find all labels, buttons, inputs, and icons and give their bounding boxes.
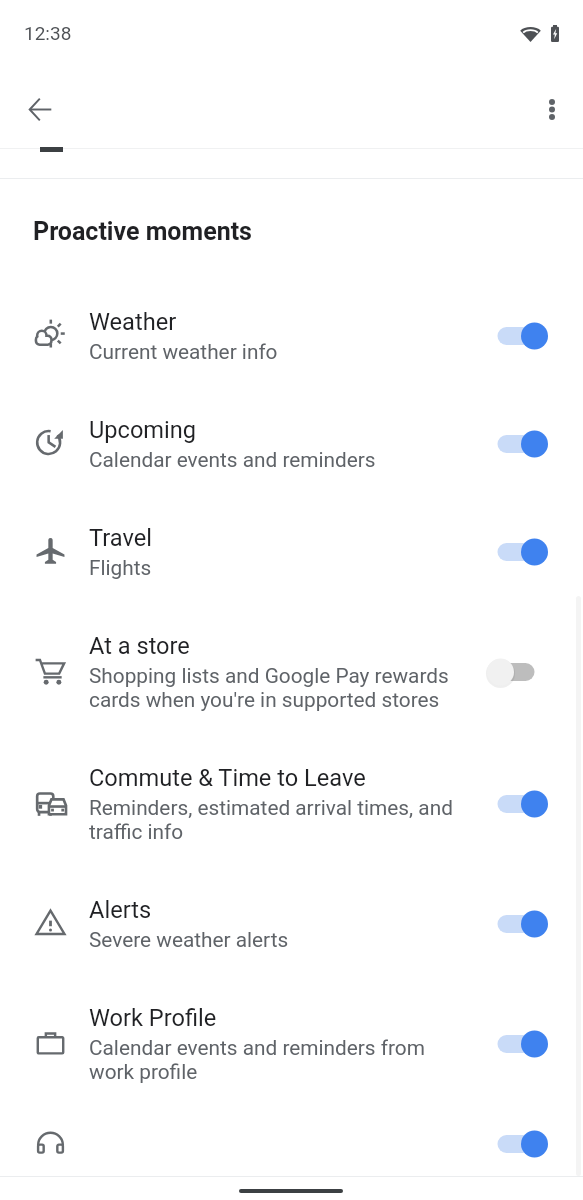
staticText: Reminders, estimated arrival times, and … [89,796,453,844]
button[interactable]: Weather [0,282,583,390]
staticText: Flights [89,556,152,580]
staticText: Shopping lists and Google Pay rewards ca… [89,664,449,712]
button[interactable]: On [483,780,583,828]
button[interactable]: At a store [0,606,583,738]
button[interactable]: On [483,1120,583,1168]
button[interactable]: Alerts [0,870,583,978]
button[interactable]: Work Profile [0,978,583,1110]
staticText: Calendar events and reminders from work … [89,1036,425,1084]
button[interactable]: On [483,900,583,948]
button[interactable]: On [483,1020,583,1068]
staticText: 12:38 [24,22,72,44]
button[interactable]: On [483,312,583,360]
staticText: Upcoming [89,416,197,444]
staticText: At a store [89,632,190,660]
staticText: Severe weather alerts [89,928,289,952]
staticText: Travel [89,524,152,552]
staticText: Work Profile [89,1004,217,1032]
button[interactable]: On [483,528,583,576]
button[interactable]: On [483,420,583,468]
button[interactable]: Back [18,87,62,131]
staticText: Weather [89,308,177,336]
button[interactable]: More options [530,87,574,131]
staticText: Commute & Time to Leave [89,764,366,792]
button[interactable]: On [0,1110,583,1187]
button[interactable]: Upcoming [0,390,583,498]
staticText: Proactive moments [33,217,252,246]
button[interactable]: Commute & Time to Leave [0,738,583,870]
staticText: Alerts [89,896,152,924]
button[interactable]: Off [483,648,583,696]
staticText: Calendar events and reminders [89,448,376,472]
button[interactable]: Travel [0,498,583,606]
staticText: Current weather info [89,340,278,364]
